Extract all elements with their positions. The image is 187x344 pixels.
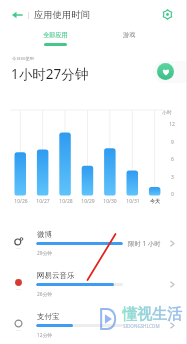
staticText: 小时 xyxy=(162,109,172,115)
staticText: 9 xyxy=(171,139,174,146)
staticText: 应用使用时间 xyxy=(34,9,90,21)
button[interactable]: 游戏 xyxy=(92,28,167,48)
staticText: 限时 1 小时 xyxy=(128,239,161,248)
staticText: 10/30 xyxy=(103,198,117,205)
staticText: 10/29 xyxy=(81,198,95,205)
button[interactable]: ···· xyxy=(0,223,187,264)
staticText: 今天 xyxy=(150,198,160,204)
button[interactable]: Favorite xyxy=(157,63,174,80)
staticText: 支付宝 xyxy=(37,312,60,321)
staticText: 3 xyxy=(171,174,174,181)
button[interactable]: 全部应用 xyxy=(18,28,92,48)
staticText: 懂视生活 xyxy=(122,305,182,324)
staticText: 10/27 xyxy=(36,198,50,205)
button[interactable]: ···· xyxy=(0,264,187,305)
button[interactable]: Back xyxy=(8,6,26,24)
staticText: 网易云音乐 xyxy=(37,271,75,280)
staticText: 6 xyxy=(171,156,174,163)
staticText: ···· xyxy=(16,246,21,251)
staticText: 29分钟 xyxy=(37,250,53,257)
staticText: 今日已使用 xyxy=(12,56,34,62)
staticText: 10/31 xyxy=(126,198,140,205)
staticText: 12分钟 xyxy=(37,332,53,339)
staticText: ···· xyxy=(16,328,21,333)
button[interactable]: ···· xyxy=(0,305,187,344)
staticText: 10/28 xyxy=(59,198,73,205)
staticText: 微博 xyxy=(37,230,52,239)
button[interactable]: Settings xyxy=(158,5,176,23)
staticText: 全部应用 xyxy=(43,31,68,39)
staticText: 10/26 xyxy=(14,198,28,205)
staticText: 12 xyxy=(169,121,175,128)
staticText: SIDONGSHI.COM xyxy=(123,323,160,329)
staticText: 0 xyxy=(171,191,174,198)
staticText: 26分钟 xyxy=(37,291,53,298)
staticText: 1小时27分钟 xyxy=(11,65,89,83)
staticText: 游戏 xyxy=(123,31,136,39)
staticText: ···· xyxy=(16,287,21,292)
